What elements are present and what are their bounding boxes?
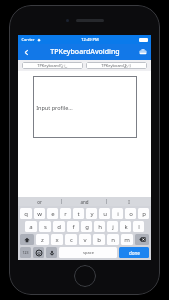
staticText: o [129, 210, 133, 218]
button[interactable]: s [39, 221, 51, 232]
button[interactable]: l [133, 221, 144, 232]
staticText: and [80, 199, 89, 205]
button[interactable]: space [59, 247, 117, 258]
staticText: x [55, 236, 59, 244]
button[interactable]: p [138, 208, 149, 219]
staticText: l [138, 223, 140, 231]
staticText: t [77, 210, 80, 218]
button[interactable]: or [18, 197, 61, 206]
button[interactable]: w [34, 208, 45, 219]
button[interactable]: e [47, 208, 58, 219]
button[interactable]: t [73, 208, 84, 219]
staticText: h [98, 223, 102, 231]
button[interactable]: i [112, 208, 123, 219]
button[interactable]: r [60, 208, 71, 219]
staticText: done [129, 250, 140, 256]
staticText: m [124, 236, 130, 244]
button[interactable]: 123 [20, 247, 31, 258]
button[interactable]: f [67, 221, 79, 232]
staticText: Input profile... [36, 104, 73, 111]
button[interactable]: u [99, 208, 110, 219]
staticText: TPKeyboardなし [37, 63, 68, 68]
button[interactable]: Input profile... [33, 76, 137, 138]
staticText: Carrier [21, 37, 35, 42]
staticText: I [128, 199, 130, 205]
staticText: n [111, 236, 115, 244]
button[interactable]: a [25, 221, 37, 232]
button[interactable]: c [65, 234, 77, 245]
staticText: space [83, 250, 94, 255]
staticText: i [117, 210, 119, 218]
button[interactable]: TPKeyboardなし [22, 62, 83, 69]
button[interactable]: m [121, 234, 133, 245]
button[interactable]: Home [74, 265, 96, 287]
button[interactable]: z [36, 234, 49, 245]
staticText: b [97, 236, 101, 244]
button[interactable]: Emoji [33, 247, 44, 258]
button[interactable]: v [79, 234, 91, 245]
button[interactable]: TPKeyboardあり [86, 62, 147, 69]
staticText: z [41, 236, 44, 244]
staticText: f [72, 223, 75, 231]
button[interactable]: Shift [20, 234, 34, 245]
staticText: w [37, 210, 42, 218]
staticText: k [124, 223, 128, 231]
staticText: or [37, 199, 42, 205]
button[interactable]: and [62, 197, 106, 206]
staticText: d [57, 223, 61, 231]
button[interactable]: b [93, 234, 105, 245]
staticText: y [90, 210, 94, 218]
staticText: v [83, 236, 87, 244]
staticText: a [29, 223, 33, 231]
staticText: TPKeyboardあり [101, 63, 132, 68]
button[interactable]: Backspace [135, 234, 149, 245]
button[interactable]: g [81, 221, 92, 232]
button[interactable]: o [125, 208, 136, 219]
button[interactable]: q [20, 208, 32, 219]
button[interactable]: d [53, 221, 65, 232]
staticText: p [142, 210, 146, 218]
button[interactable]: Dictate [46, 247, 57, 258]
staticText: j [112, 223, 114, 231]
button[interactable]: y [86, 208, 97, 219]
button[interactable]: Folder [135, 44, 151, 60]
staticText: c [70, 236, 73, 244]
button[interactable]: n [107, 234, 119, 245]
staticText: 12:49 PM [81, 37, 99, 42]
staticText: TPKeyboardAvoiding [50, 47, 120, 57]
button[interactable]: I [107, 197, 151, 206]
staticText: u [103, 210, 107, 218]
button[interactable]: j [107, 221, 118, 232]
staticText: s [44, 223, 47, 231]
button[interactable]: done [119, 247, 149, 258]
button[interactable]: x [51, 234, 63, 245]
button[interactable]: k [120, 221, 131, 232]
button[interactable]: Back [18, 44, 34, 60]
staticText: e [51, 210, 55, 218]
staticText: r [64, 210, 67, 218]
staticText: 123 [22, 250, 29, 255]
staticText: q [24, 210, 28, 218]
staticText: g [85, 223, 89, 231]
button[interactable]: h [94, 221, 105, 232]
